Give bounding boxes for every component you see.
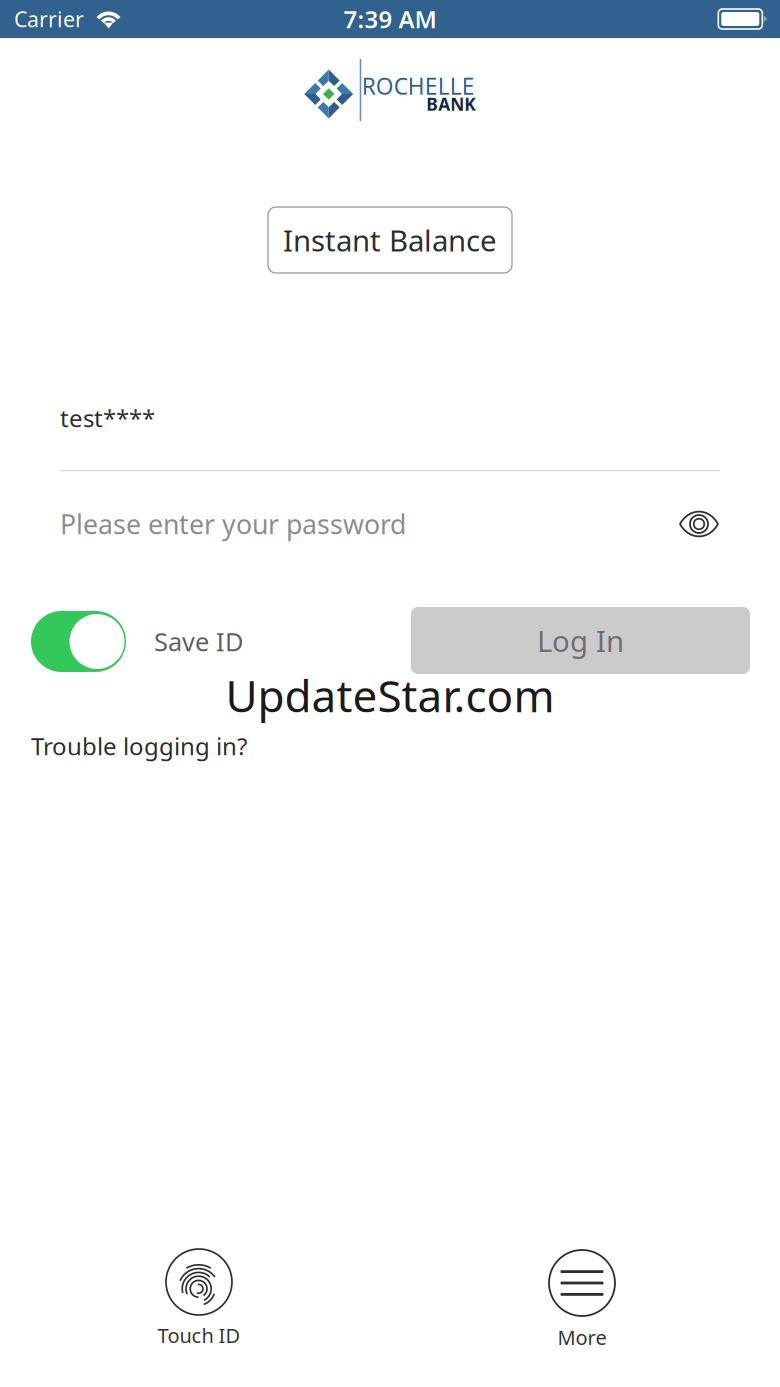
staticText: Save ID: [154, 625, 243, 658]
button[interactable]: Log In: [411, 607, 750, 674]
staticText: test****: [60, 402, 155, 434]
staticText: Log In: [537, 621, 624, 660]
staticText: More: [557, 1324, 606, 1351]
button[interactable]: Show password: [678, 509, 720, 539]
button[interactable]: Instant Balance: [268, 207, 512, 273]
staticText: Please enter your password: [60, 506, 406, 542]
staticText: Instant Balance: [283, 220, 497, 259]
staticText: Trouble logging in?: [31, 730, 247, 762]
button[interactable]: More: [532, 1249, 632, 1351]
staticText: BANK: [426, 92, 476, 115]
staticText: UpdateStar.com: [225, 666, 554, 724]
button[interactable]: Save ID: [31, 611, 243, 672]
staticText: Carrier: [14, 5, 84, 33]
button[interactable]: Touch ID: [149, 1249, 249, 1349]
staticText: 7:39 AM: [343, 3, 436, 35]
staticText: ROCHELLE: [362, 71, 475, 101]
button[interactable]: Trouble logging in?: [31, 730, 247, 762]
staticText: Touch ID: [157, 1322, 240, 1349]
